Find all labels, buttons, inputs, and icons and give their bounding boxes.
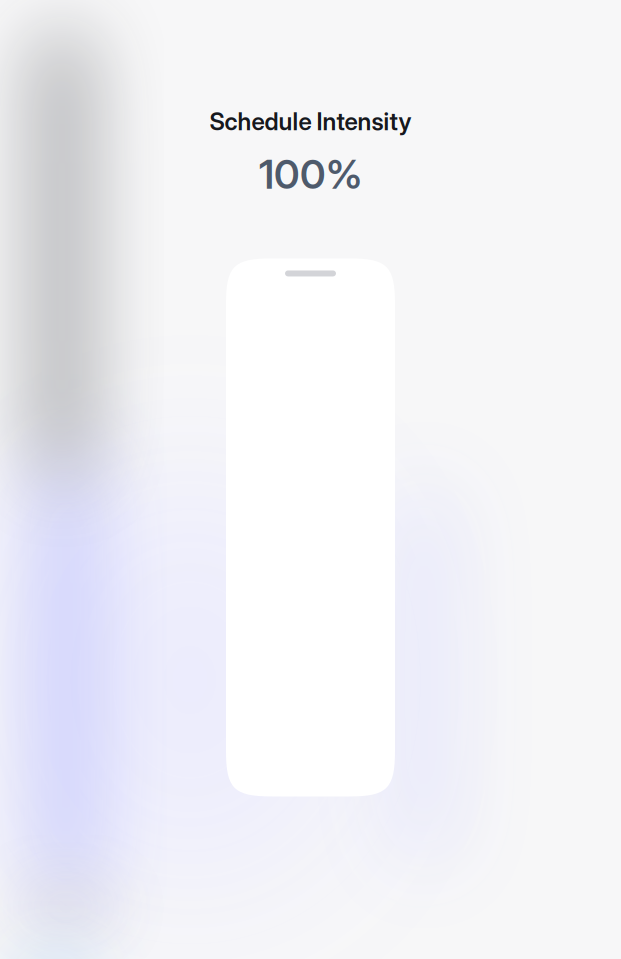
staticText: 100% <box>259 150 362 198</box>
staticText: Schedule Intensity <box>209 107 411 136</box>
